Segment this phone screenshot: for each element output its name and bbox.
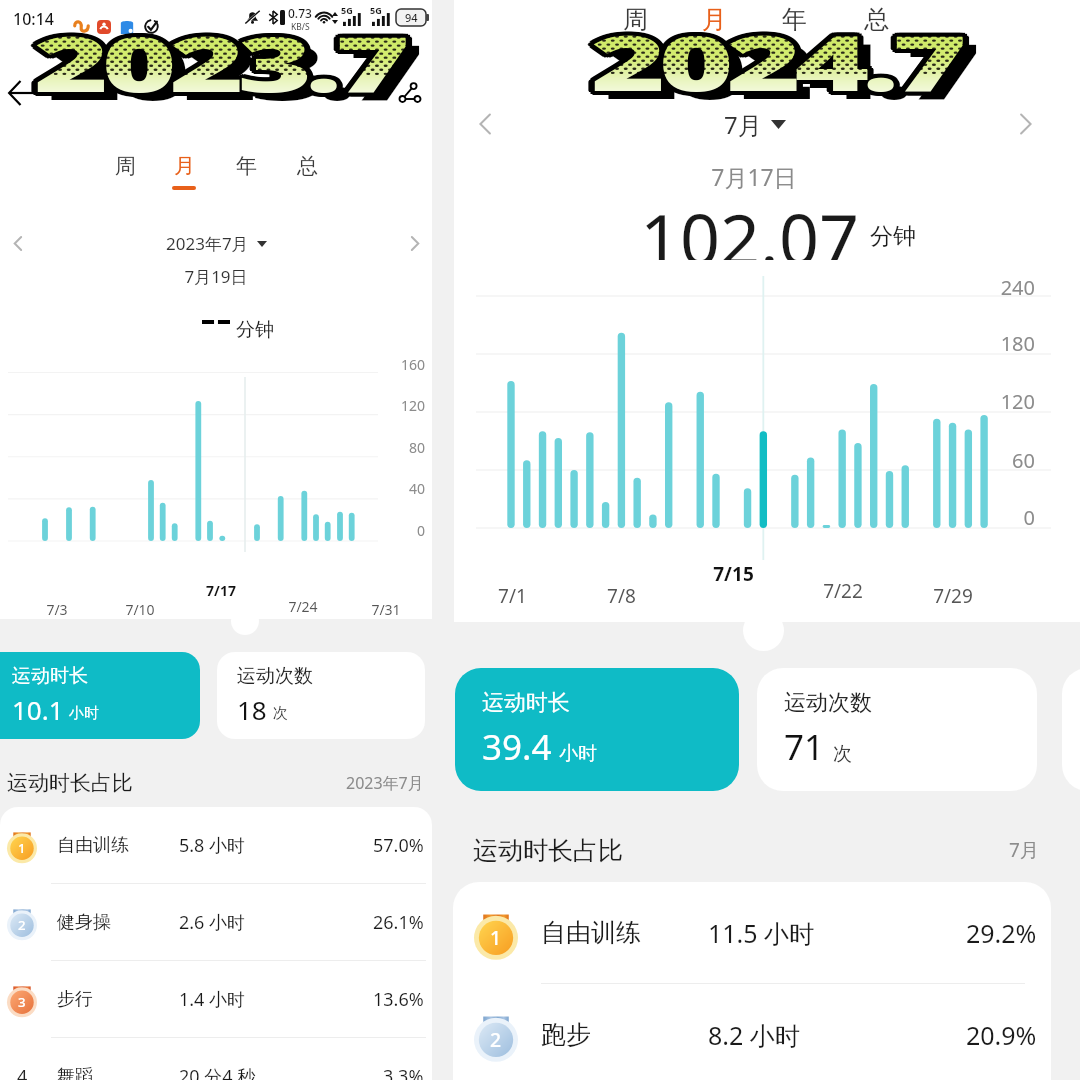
staticText: 次: [273, 704, 288, 723]
staticText: 40: [408, 479, 425, 498]
staticText: 26.1%: [373, 910, 424, 935]
staticText: 健身操: [57, 911, 111, 934]
staticText: 7月: [1009, 837, 1039, 863]
button[interactable]: 年: [760, 0, 828, 43]
staticText: 5.8 小时: [179, 833, 246, 858]
staticText: 94: [405, 10, 418, 25]
staticText: 舞蹈: [57, 1065, 93, 1080]
staticText: 2: [490, 1026, 502, 1052]
staticText: 10:14: [13, 8, 54, 30]
button[interactable]: 周: [601, 0, 669, 43]
staticText: 0: [1023, 504, 1035, 531]
staticText: 20 分4 秒: [179, 1064, 256, 1080]
button[interactable]: Next month: [1005, 104, 1045, 144]
staticText: 7/3: [46, 600, 68, 619]
button[interactable]: 3: [0, 961, 432, 1037]
staticText: 7/24: [288, 597, 318, 616]
staticText: 102.07: [640, 190, 859, 260]
staticText: 运动次数: [237, 664, 313, 688]
staticText: 运动次数: [784, 689, 872, 717]
button[interactable]: Previous month: [2, 227, 34, 259]
button[interactable]: 月: [156, 142, 212, 190]
button[interactable]: 运动次数: [757, 668, 1037, 791]
staticText: 月: [174, 153, 195, 179]
staticText: 3.3%: [383, 1064, 424, 1080]
staticText: 71: [784, 723, 825, 771]
button[interactable]: Share: [392, 75, 428, 111]
staticText: 1.4 小时: [179, 987, 246, 1012]
button[interactable]: 年: [218, 142, 274, 190]
button[interactable]: 2023年7月: [150, 226, 282, 260]
staticText: 运动时长占比: [7, 770, 133, 796]
staticText: 2: [18, 916, 26, 934]
staticText: 39.4: [482, 723, 552, 771]
button[interactable]: 月: [680, 0, 748, 43]
staticText: 7/29: [933, 583, 973, 609]
button[interactable]: 总: [279, 142, 335, 190]
staticText: KB/S: [291, 21, 310, 33]
staticText: 分钟: [236, 318, 274, 342]
staticText: 120: [400, 396, 425, 415]
staticText: 7月: [724, 108, 762, 141]
staticText: 3: [18, 993, 26, 1011]
staticText: 2023年7月: [166, 232, 249, 255]
button[interactable]: Next month: [398, 227, 430, 259]
staticText: 7/8: [607, 583, 636, 609]
staticText: 年: [782, 4, 807, 35]
staticText: 运动时长: [12, 664, 88, 688]
staticText: 120: [1000, 388, 1035, 415]
button[interactable]: 2: [0, 884, 432, 960]
staticText: 0: [416, 521, 425, 540]
staticText: 57.0%: [373, 833, 424, 858]
staticText: 7/17: [206, 581, 236, 600]
staticText: 2023年7月: [346, 772, 424, 794]
staticText: 18: [237, 692, 267, 727]
staticText: 7月17日: [711, 161, 797, 192]
staticText: 11.5 小时: [708, 916, 815, 950]
button[interactable]: 1: [453, 882, 1051, 983]
staticText: 年: [236, 153, 257, 179]
button[interactable]: More statistics: [1062, 668, 1080, 791]
button[interactable]: 4: [0, 1038, 432, 1080]
staticText: 7/15: [713, 561, 754, 587]
staticText: 周: [115, 153, 136, 179]
staticText: 10.1: [12, 692, 64, 727]
staticText: 0.73: [288, 5, 312, 21]
button[interactable]: Previous month: [466, 104, 506, 144]
staticText: 7/22: [823, 578, 863, 604]
button[interactable]: 运动时长: [0, 652, 200, 739]
staticText: 跑步: [541, 1019, 591, 1050]
button[interactable]: 运动时长: [455, 668, 739, 791]
staticText: 7/1: [498, 583, 527, 609]
staticText: 1: [490, 924, 502, 950]
staticText: 80: [408, 438, 425, 457]
staticText: 20.9%: [966, 1018, 1037, 1052]
staticText: 分钟: [870, 222, 916, 251]
staticText: 240: [1000, 274, 1035, 301]
button[interactable]: Back: [2, 73, 42, 113]
staticText: 周: [623, 4, 648, 35]
staticText: 小时: [559, 742, 597, 766]
staticText: 5G: [370, 4, 382, 16]
staticText: 运动时长: [482, 689, 570, 717]
button[interactable]: 总: [842, 0, 910, 43]
staticText: 总: [297, 153, 318, 179]
staticText: 5G: [341, 4, 353, 16]
button[interactable]: 7月: [700, 104, 810, 144]
button[interactable]: 1: [0, 807, 432, 883]
button[interactable]: 周: [97, 142, 153, 190]
staticText: 运动时长占比: [473, 835, 623, 866]
staticText: 29.2%: [966, 916, 1037, 950]
staticText: 小时: [69, 704, 99, 723]
staticText: 7/31: [371, 600, 401, 619]
staticText: 160: [400, 355, 425, 374]
staticText: 1: [18, 839, 26, 857]
button[interactable]: 运动次数: [217, 652, 425, 739]
staticText: 步行: [57, 988, 93, 1011]
staticText: 4: [17, 1064, 28, 1080]
staticText: 8.2 小时: [708, 1018, 800, 1052]
staticText: 自由训练: [57, 834, 129, 857]
staticText: 60: [1012, 447, 1035, 474]
staticText: 7月19日: [184, 265, 248, 288]
button[interactable]: 2: [453, 984, 1051, 1080]
